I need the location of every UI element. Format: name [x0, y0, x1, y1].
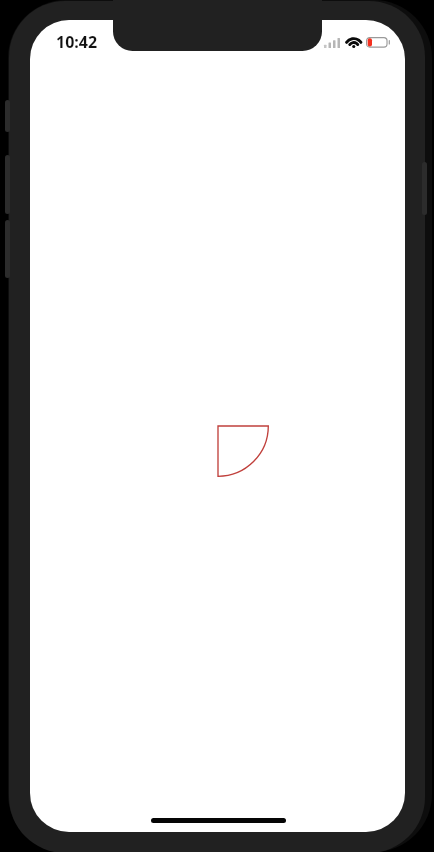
- button[interactable]: Silent switch: [5, 100, 10, 132]
- button[interactable]: Home indicator: [151, 818, 286, 823]
- button[interactable]: Volume down: [5, 220, 10, 278]
- button[interactable]: Quarter circle logo: [217, 425, 271, 479]
- staticText: 10:42: [56, 31, 98, 53]
- button[interactable]: Volume up: [5, 155, 10, 214]
